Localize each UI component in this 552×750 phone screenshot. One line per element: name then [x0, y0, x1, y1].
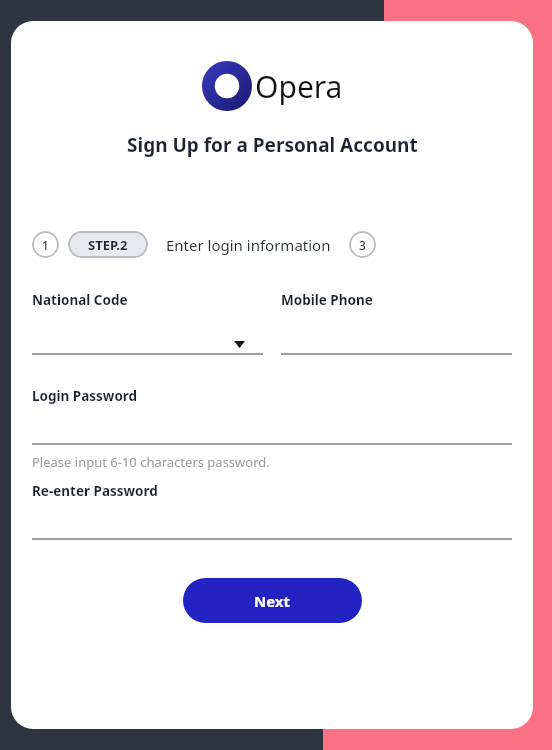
staticText: 3 — [359, 237, 366, 253]
staticText: National Code — [32, 291, 128, 309]
staticText: 1 — [42, 237, 49, 253]
staticText: STEP.2 — [88, 236, 128, 254]
button[interactable]: 3 — [349, 231, 376, 258]
staticText: Next — [254, 591, 291, 611]
staticText: Login Password — [32, 387, 138, 405]
staticText: Re-enter Password — [32, 482, 158, 500]
staticText: Mobile Phone — [281, 291, 373, 309]
button[interactable]: 1 — [32, 231, 59, 258]
staticText: Please input 6-10 characters password. — [32, 453, 270, 471]
button[interactable]: STEP.2 — [68, 231, 148, 258]
staticText: Enter login information — [166, 235, 331, 255]
staticText: Opera — [255, 66, 343, 107]
staticText: Sign Up for a Personal Account — [127, 132, 418, 158]
button[interactable]: Next — [183, 578, 362, 623]
